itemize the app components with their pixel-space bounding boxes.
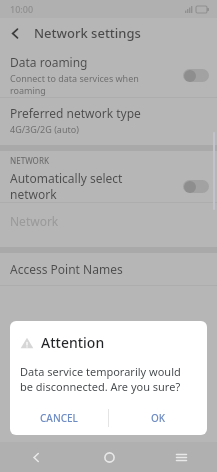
staticText: OK	[151, 411, 166, 425]
staticText: Data roaming	[10, 54, 88, 70]
staticText: 10:00	[10, 3, 34, 15]
button[interactable]: OK	[109, 401, 207, 435]
staticText: NETWORK	[10, 155, 49, 166]
staticText: Connect to data services when roaming	[10, 72, 167, 96]
staticText: Network	[10, 213, 59, 229]
staticText: Automatically select network	[10, 170, 167, 202]
button[interactable]: Recent apps	[145, 442, 217, 472]
staticText: Attention	[41, 333, 105, 352]
button[interactable]: Data roaming	[0, 53, 217, 97]
staticText: 4G/3G/2G (auto)	[10, 123, 79, 135]
button[interactable]: Back	[0, 442, 73, 472]
button[interactable]: Network	[0, 203, 217, 239]
button[interactable]: Home	[73, 442, 145, 472]
staticText: CANCEL	[40, 411, 78, 425]
button[interactable]: Automatically select network	[0, 170, 217, 202]
staticText: Network settings	[34, 24, 141, 42]
button[interactable]: Back	[0, 18, 30, 48]
staticText: Data service temporarily would be discon…	[20, 364, 193, 394]
button[interactable]	[183, 69, 209, 82]
staticText: Preferred network type	[10, 105, 141, 121]
button[interactable]: Access Point Names	[0, 253, 217, 285]
button[interactable]: Preferred network type	[0, 98, 217, 142]
staticText: Access Point Names	[10, 261, 123, 277]
button[interactable]: CANCEL	[10, 401, 108, 435]
button[interactable]	[183, 180, 209, 193]
